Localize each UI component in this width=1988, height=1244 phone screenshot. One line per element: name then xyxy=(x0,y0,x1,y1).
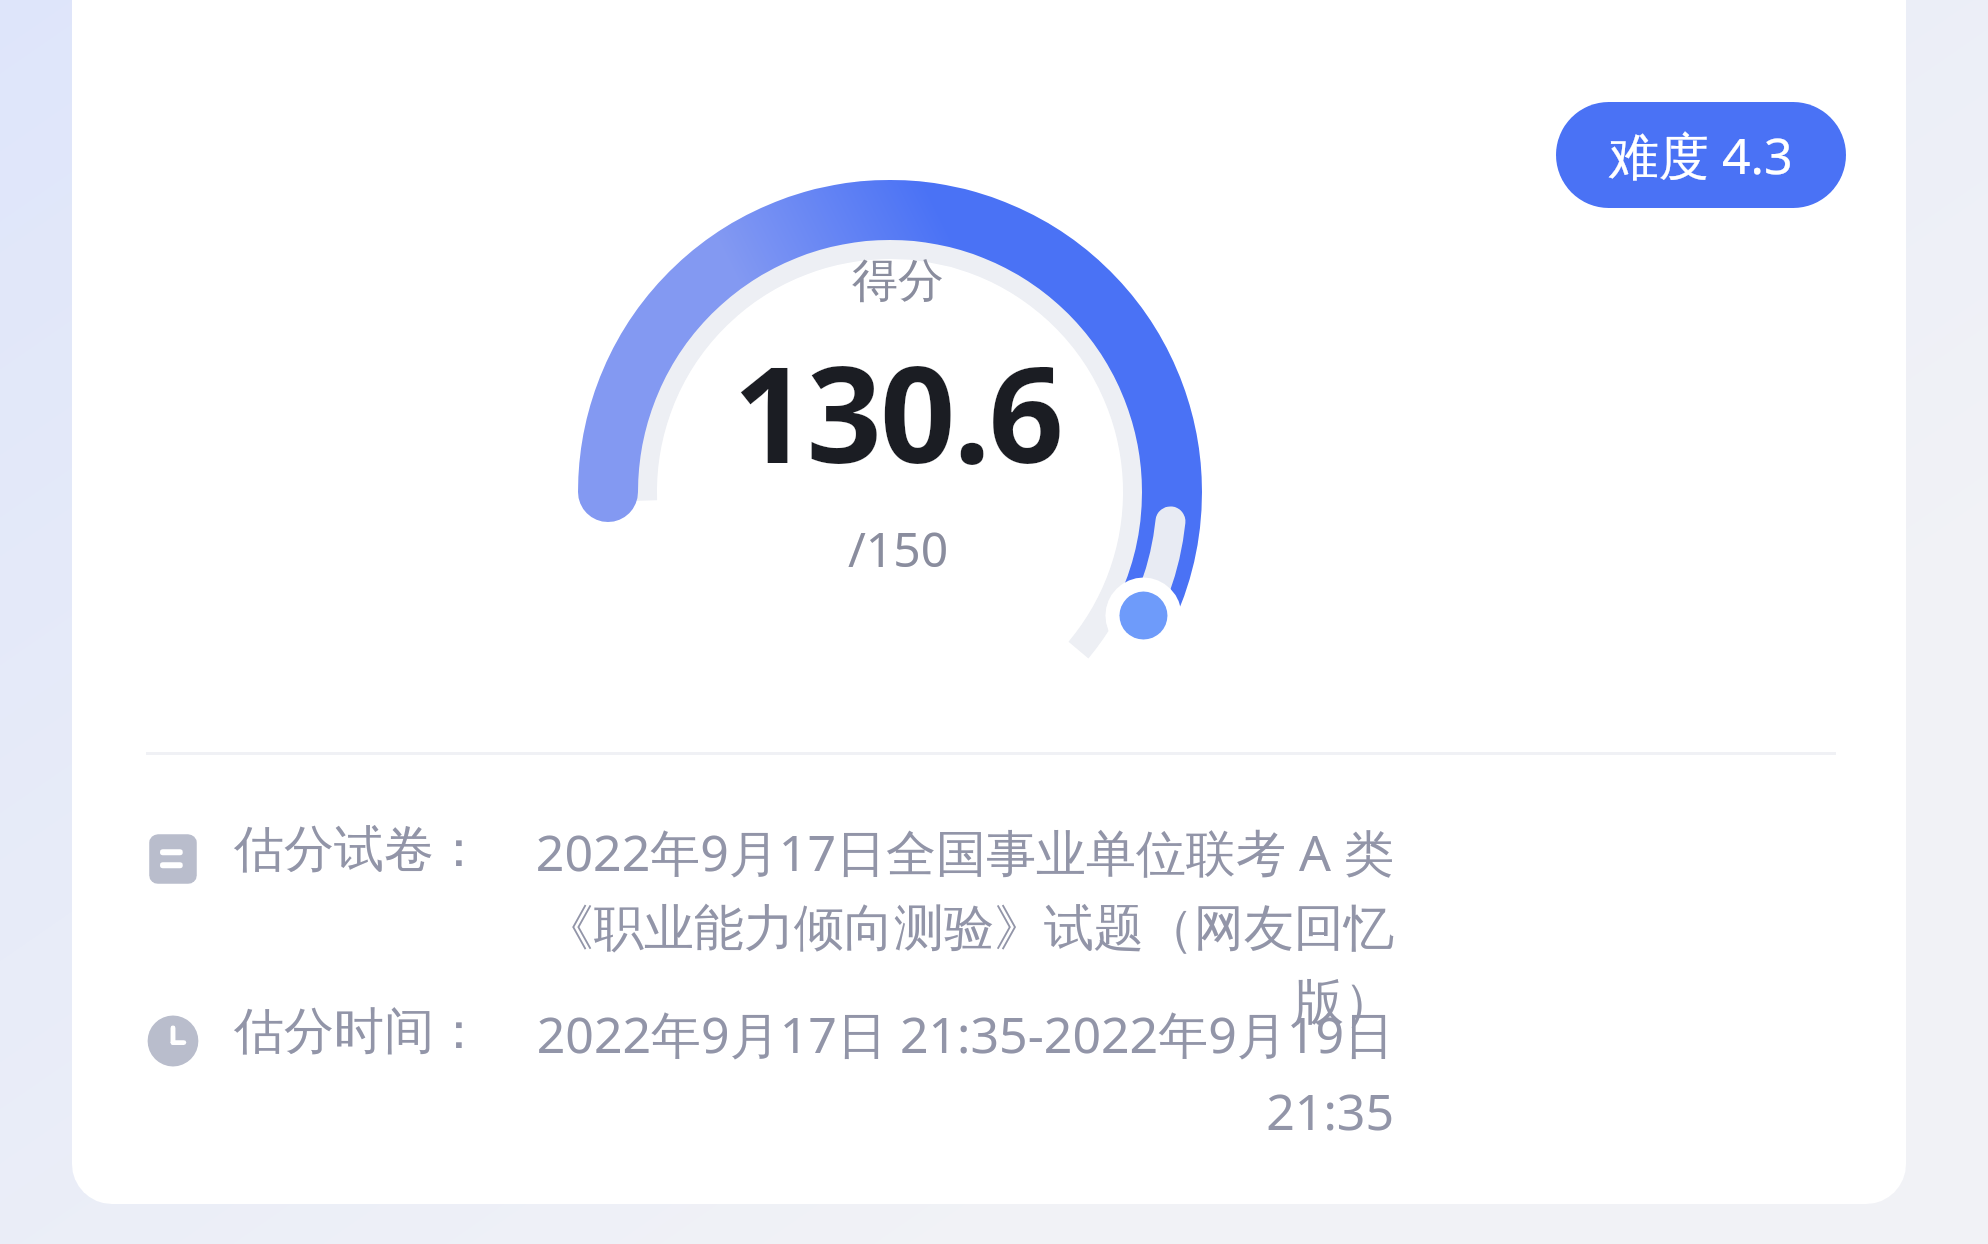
button[interactable]: Time xyxy=(146,1000,1846,1145)
staticText: 130.6 xyxy=(733,322,1063,502)
staticText: /150 xyxy=(848,516,949,581)
staticText: 估分时间： xyxy=(234,1000,484,1063)
button[interactable]: 难度 4.3 xyxy=(1556,102,1846,208)
other: Paper xyxy=(146,832,200,886)
staticText: 2022年9月17日全国事业单位联考 A 类《职业能力倾向测验》试题（网友回忆版… xyxy=(494,818,1394,1034)
staticText: 估分试卷： xyxy=(234,818,484,881)
staticText: 难度 4.3 xyxy=(1609,121,1793,189)
other: Time xyxy=(146,1014,200,1068)
staticText: 2022年9月17日 21:35-2022年9月19日 21:35 xyxy=(494,1000,1394,1145)
button[interactable]: Paper xyxy=(146,818,1846,1034)
staticText: 得分 xyxy=(852,252,944,310)
